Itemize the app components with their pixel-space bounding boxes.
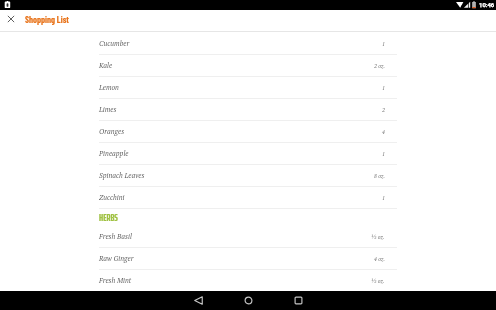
staticText: Cucumber	[99, 39, 130, 48]
button[interactable]: Lemon	[99, 77, 397, 99]
button[interactable]: Close	[0, 10, 21, 28]
button[interactable]: Oranges	[99, 121, 397, 143]
button[interactable]: Fresh Basil	[99, 226, 397, 248]
staticText: Pineapple	[99, 149, 129, 158]
staticText: 4 oz.	[374, 255, 385, 262]
staticText: 10:46	[479, 1, 495, 8]
staticText: 2 oz.	[374, 62, 385, 69]
staticText: 1	[382, 194, 385, 201]
staticText: Shopping List	[25, 14, 69, 25]
staticText: Fresh Basil	[99, 232, 132, 241]
button[interactable]: Kale	[99, 55, 397, 77]
staticText: 1	[382, 84, 385, 91]
staticText: Lemon	[99, 83, 119, 92]
button[interactable]: Zucchini	[99, 187, 397, 209]
button[interactable]: Home	[223, 291, 273, 310]
button[interactable]: Cucumber	[99, 33, 397, 55]
staticText: Fresh Mint	[99, 276, 132, 285]
staticText: 1	[382, 150, 385, 157]
staticText: Limes	[99, 105, 117, 114]
button[interactable]: Spinach Leaves	[99, 165, 397, 187]
staticText: Zucchini	[99, 193, 125, 202]
staticText: 2	[382, 106, 385, 113]
button[interactable]: Fresh Mint	[99, 270, 397, 292]
staticText: 8 oz.	[374, 172, 385, 179]
staticText: ½ oz.	[371, 277, 385, 284]
button[interactable]: Limes	[99, 99, 397, 121]
button[interactable]: Pineapple	[99, 143, 397, 165]
staticText: Oranges	[99, 127, 125, 136]
staticText: 1	[382, 40, 385, 47]
staticText: 4	[382, 128, 385, 135]
staticText: HERBS	[99, 210, 118, 225]
staticText: ½ oz.	[371, 233, 385, 240]
button[interactable]: Back	[173, 291, 223, 310]
staticText: Raw Ginger	[99, 254, 134, 263]
button[interactable]: Recents	[273, 291, 323, 310]
button[interactable]: Raw Ginger	[99, 248, 397, 270]
staticText: Kale	[99, 61, 113, 70]
staticText: Spinach Leaves	[99, 171, 145, 180]
